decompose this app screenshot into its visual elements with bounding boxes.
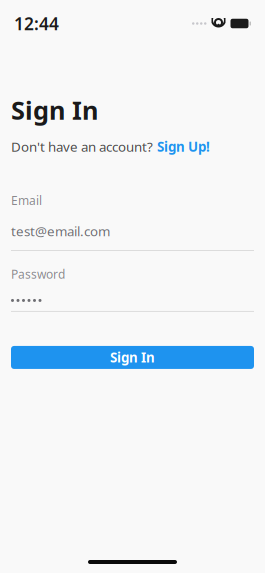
staticText: Password [11,266,65,282]
staticText: test@email.com [11,222,110,240]
staticText: 12:44 [14,12,59,35]
button[interactable]: Sign Up! [157,138,210,155]
staticText: Email [11,192,42,208]
button[interactable] [11,282,254,312]
staticText: Sign In [110,349,155,366]
staticText: Don't have an account? [11,138,153,155]
staticText: Sign In [11,93,98,127]
button[interactable]: test@email.com [11,208,254,251]
staticText: Sign Up! [157,138,210,155]
button[interactable]: Sign In [11,346,254,369]
